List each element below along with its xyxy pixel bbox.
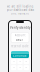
staticText: Account (14, 33, 25, 37)
staticText: resend code (11, 44, 29, 48)
staticText: 12 (19, 67, 21, 68)
staticText: 12 (19, 61, 21, 62)
staticText: Continue (13, 54, 27, 58)
staticText: 12 (25, 67, 27, 68)
staticText: one moment (11, 12, 29, 15)
staticText: 12 (25, 61, 27, 62)
staticText: Verify identity (10, 26, 30, 29)
staticText: your dashboard data (6, 8, 33, 12)
staticText: 4821 (16, 38, 24, 41)
staticText: we are still loading (6, 5, 33, 8)
